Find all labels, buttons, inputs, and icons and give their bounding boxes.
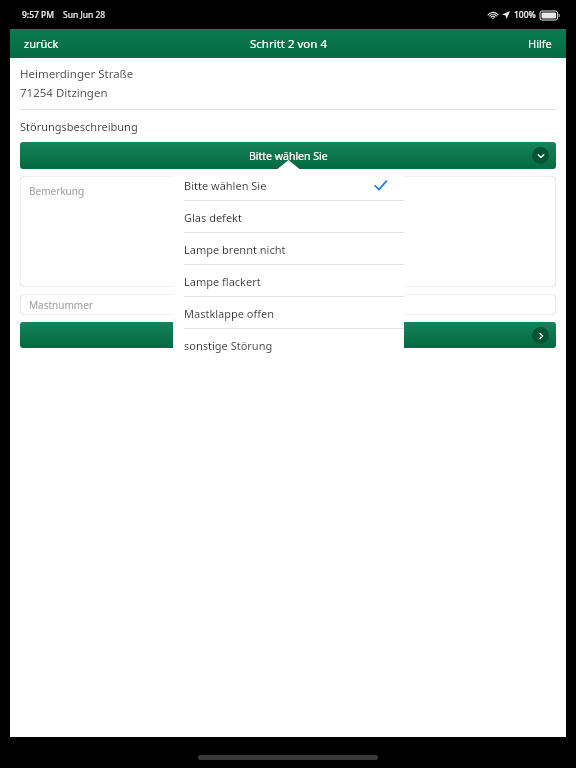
staticText: zurück [24,36,59,51]
staticText: 71254 Ditzingen [20,85,108,101]
staticText: Schritt 2 von 4 [250,36,327,52]
staticText: Sun Jun 28 [63,9,106,21]
staticText: Glas defekt [184,210,242,225]
staticText: 100% [514,9,536,21]
button[interactable]: Glas defekt [173,201,404,233]
button[interactable]: sonstige Störung [173,329,404,361]
staticText: Lampe brennt nicht [184,242,286,257]
button[interactable]: Weiter [20,322,556,348]
staticText: 9:57 PM [22,9,55,21]
button[interactable]: Lampe flackert [173,265,404,297]
button[interactable]: Bitte wählen Sie [173,169,404,201]
staticText: Hilfe [528,36,552,51]
staticText: Störungsbeschreibung [20,119,138,134]
staticText: Bitte wählen Sie [184,178,267,193]
staticText: sonstige Störung [184,338,273,353]
staticText: Mastklappe offen [184,306,275,321]
staticText: Heimerdinger Straße [20,66,134,82]
button[interactable]: Mastklappe offen [173,297,404,329]
staticText: Bemerkung [29,184,85,198]
staticText: Mastnummer [29,298,93,312]
button[interactable]: Bemerkung [20,176,556,287]
staticText: Bitte wählen Sie [249,149,328,163]
button[interactable]: Hilfe [514,31,566,56]
button[interactable]: Bitte wählen Sie [20,142,556,169]
staticText: Lampe flackert [184,274,261,289]
button[interactable]: zurück [10,31,73,56]
button[interactable]: Lampe brennt nicht [173,233,404,265]
button[interactable]: Mastnummer [20,294,556,315]
